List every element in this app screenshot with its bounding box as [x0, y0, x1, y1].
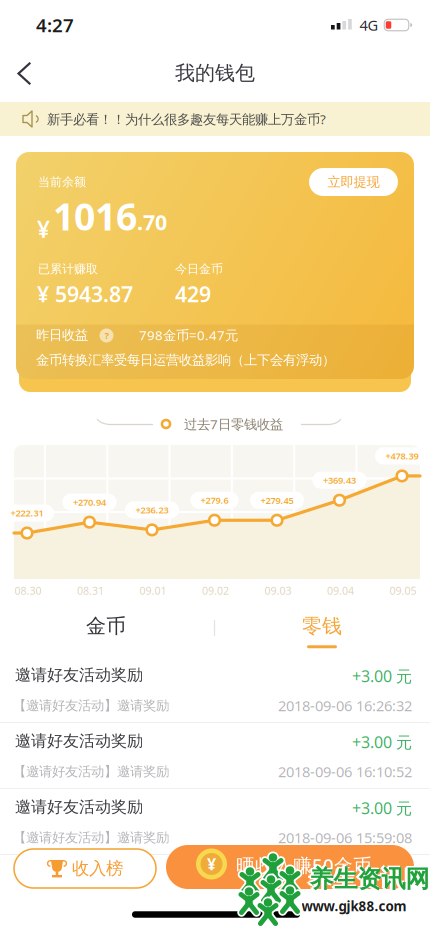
- staticText: 09.05: [389, 583, 416, 598]
- staticText: 立即提现: [327, 174, 379, 190]
- button[interactable]: 邀请好友活动奖励: [0, 723, 430, 789]
- staticText: 【邀请好友活动】邀请奖励: [13, 829, 169, 846]
- staticText: 养生资讯网: [308, 863, 428, 892]
- staticText: 晒收入赚50金币: [236, 853, 372, 877]
- staticText: 金币转换汇率受每日运营收益影响（上下会有浮动）: [36, 352, 335, 368]
- staticText: +3.00 元: [352, 731, 412, 753]
- button[interactable]: [8, 62, 40, 84]
- button[interactable]: 零钱: [302, 614, 342, 648]
- staticText: 养生资讯网: [306, 864, 426, 894]
- staticText: 养生资讯网: [309, 864, 429, 894]
- staticText: 1016: [53, 191, 137, 241]
- staticText: 09.04: [327, 583, 354, 598]
- staticText: 新手必看！！为什么很多趣友每天能赚上万金币?: [47, 110, 326, 128]
- staticText: ?: [104, 329, 108, 342]
- staticText: +279.6: [200, 494, 228, 506]
- staticText: +279.45: [260, 494, 293, 506]
- staticText: 金币: [86, 614, 126, 638]
- staticText: ¥ 5943.87: [37, 280, 133, 308]
- staticText: .70: [137, 208, 167, 236]
- staticText: 429: [175, 280, 211, 308]
- staticText: +236.23: [135, 504, 168, 516]
- staticText: 09.01: [139, 583, 166, 598]
- staticText: 当前余额: [38, 175, 86, 189]
- staticText: 4:27: [36, 13, 74, 37]
- staticText: www.gjk88.com: [301, 897, 406, 915]
- staticText: 养生资讯网: [308, 866, 428, 895]
- staticText: 2018-09-06 16:26:32: [278, 696, 412, 715]
- staticText: 08.30: [14, 583, 41, 598]
- staticText: 邀请好友活动奖励: [15, 665, 143, 685]
- staticText: ¥: [37, 214, 50, 244]
- staticText: 2018-09-06 16:10:52: [278, 762, 412, 781]
- staticText: +3.00 元: [352, 797, 412, 819]
- staticText: +270.94: [73, 496, 106, 508]
- staticText: 08.31: [77, 583, 104, 598]
- staticText: 昨日收益: [36, 327, 88, 343]
- button[interactable]: 邀请好友活动奖励: [0, 657, 430, 723]
- staticText: 已累计赚取: [38, 262, 98, 276]
- staticText: 我的钱包: [175, 61, 255, 85]
- staticText: +369.43: [323, 474, 356, 486]
- staticText: 09.03: [264, 583, 291, 598]
- staticText: +222.31: [10, 507, 43, 519]
- button[interactable]: 金币: [46, 608, 166, 644]
- staticText: 过去7日零钱收益: [184, 415, 283, 433]
- staticText: 零钱: [302, 614, 342, 638]
- button[interactable]: 邀请好友活动奖励: [0, 789, 430, 855]
- staticText: +3.00 元: [352, 665, 412, 687]
- staticText: 收入榜: [72, 858, 123, 879]
- staticText: 2018-09-06 15:59:08: [278, 828, 412, 847]
- staticText: 邀请好友活动奖励: [15, 797, 143, 817]
- staticText: 798金币=0.47元: [139, 326, 238, 344]
- staticText: ¥: [207, 853, 216, 875]
- button[interactable]: ¥: [166, 845, 414, 889]
- staticText: 【邀请好友活动】邀请奖励: [13, 763, 169, 780]
- button[interactable]: 收入榜: [14, 849, 156, 888]
- staticText: 养生资讯网: [309, 864, 429, 894]
- staticText: 4G: [359, 15, 378, 35]
- staticText: 邀请好友活动奖励: [15, 731, 143, 751]
- staticText: +478.39: [385, 450, 418, 462]
- button[interactable]: 立即提现: [309, 168, 398, 196]
- staticText: 09.02: [202, 583, 229, 598]
- staticText: 【邀请好友活动】邀请奖励: [13, 697, 169, 714]
- staticText: 今日金币: [175, 262, 223, 276]
